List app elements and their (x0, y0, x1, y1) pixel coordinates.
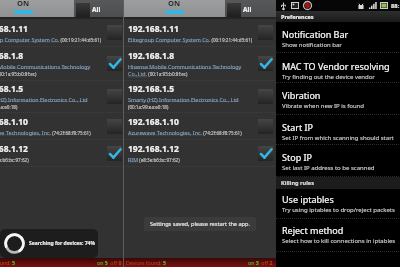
staticText: Elitegroup Computer System Co. (00:19:21… (0, 36, 102, 43)
button[interactable]: MAC TO Vendor resolving (276, 53, 400, 83)
staticText: MAC TO Vendor resolving (282, 60, 390, 72)
staticText: Searching for devices: 74% (29, 240, 95, 247)
button[interactable]: ON (0, 0, 74, 19)
staticText: 192.168.1.5 (0, 83, 24, 95)
button[interactable]: 192.168.1.11 (124, 19, 276, 47)
button[interactable]: 192.168.1.5 (0, 81, 125, 113)
button[interactable]: 192.168.1.12 (124, 140, 276, 167)
button[interactable]: 192.168.1.8 (0, 47, 125, 81)
staticText: 192.168.1.8 (128, 50, 175, 62)
button[interactable]: 192.168.1.10 (124, 113, 276, 140)
staticText: 192.168.1.11 (128, 23, 179, 35)
staticText: Vibration (282, 89, 321, 101)
staticText: All (243, 5, 252, 14)
staticText: Set IP from which scanning should start (282, 134, 394, 142)
staticText: Select how to kill connections in iptabl… (282, 237, 396, 245)
button[interactable]: 192.168.1.5 (124, 81, 276, 113)
staticText: Try finding out the device vendor (282, 73, 375, 81)
staticText: 192.168.1.8 (0, 50, 24, 62)
button[interactable]: 192.168.1.8 (124, 47, 276, 81)
staticText: 88: (391, 2, 400, 10)
staticText: Hisense Mobile Communications Technology… (0, 63, 104, 78)
button[interactable]: Reject method (276, 219, 400, 252)
other: Screenshot (291, 2, 299, 9)
button[interactable]: Stop IP (276, 145, 400, 177)
staticText: Set last IP address to be scanned (282, 164, 375, 172)
button[interactable]: Notification Bar (276, 22, 400, 53)
staticText: Elitegroup Computer System Co. (00:19:21… (128, 36, 253, 43)
staticText: Reject method (282, 224, 344, 236)
staticText: Vibrate when new IP is found (282, 102, 365, 110)
staticText: Settings saved, please restart the app. (150, 220, 250, 228)
button[interactable]: 192.168.1.11 (0, 19, 125, 47)
button[interactable]: All (74, 0, 125, 19)
other: Android (357, 2, 365, 10)
button[interactable]: Use iptables (276, 189, 400, 219)
staticText: ON (168, 0, 181, 8)
staticText: 192.168.1.10 (0, 116, 28, 128)
staticText: Notification Bar (282, 28, 349, 40)
staticText: on 3 off 2 (248, 259, 273, 266)
staticText: 192.168.1.12 (0, 143, 28, 155)
staticText: Smarty (HZ) Information Electronics Co.,… (128, 96, 255, 111)
other: USB (281, 2, 286, 10)
staticText: All (92, 5, 101, 14)
staticText: Show notification bar (282, 41, 342, 49)
button[interactable]: 192.168.1.12 (0, 140, 125, 167)
staticText: 192.168.1.11 (0, 23, 28, 35)
staticText: Killing rules (281, 179, 314, 187)
other: Scanning progress (4, 233, 25, 254)
staticText: RIM (e8:3e:b6:bc:97:62) (0, 156, 29, 163)
button[interactable]: Start IP (276, 115, 400, 145)
staticText: ON (17, 0, 30, 8)
staticText: Use iptables (282, 193, 334, 205)
staticText: Devices found: 5 (126, 259, 167, 266)
staticText: 192.168.1.5 (128, 83, 175, 95)
staticText: RIM (e8:3e:b6:bc:97:62) (128, 156, 180, 163)
other: Signal (369, 2, 377, 9)
staticText: Stop IP (282, 151, 313, 163)
staticText: 192.168.1.12 (128, 143, 179, 155)
staticText: 192.168.1.10 (128, 116, 179, 128)
staticText: Devices found: 5 (0, 259, 16, 266)
staticText: Azurewave Technologies, Inc. (74:2f:68:f… (128, 129, 242, 136)
button[interactable]: ON (124, 0, 225, 19)
other: Recording (303, 1, 312, 10)
button[interactable]: Scanning progress (0, 229, 98, 258)
button[interactable]: Vibration (276, 83, 400, 115)
staticText: Smarty (HZ) Information Electronics Co.,… (0, 96, 104, 111)
staticText: Preferences (281, 13, 314, 20)
staticText: Try using iptables to drop/reject packet… (282, 206, 395, 214)
button[interactable]: All (225, 0, 276, 19)
staticText: Hisense Mobile Communications Technology… (128, 63, 255, 78)
staticText: Start IP (282, 121, 314, 133)
staticText: Azurewave Technologies, Inc. (74:2f:68:f… (0, 129, 91, 136)
other: Battery (380, 2, 389, 9)
staticText: on 5 off 0 (97, 259, 122, 266)
button[interactable]: 192.168.1.10 (0, 113, 125, 140)
